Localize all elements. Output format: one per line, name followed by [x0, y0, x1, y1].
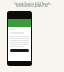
button[interactable] — [10, 49, 29, 52]
staticText: Second Quarter 2024 Results — [14, 2, 51, 6]
staticText: and Business Update Call — [16, 4, 48, 8]
